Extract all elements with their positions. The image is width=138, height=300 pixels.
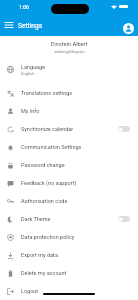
staticText: Feedback (no support) bbox=[21, 180, 77, 186]
button[interactable]: My Info bbox=[0, 102, 138, 120]
button[interactable]: Data protection policy bbox=[0, 228, 138, 246]
staticText: Authorisation code bbox=[21, 198, 68, 204]
staticText: Export my data bbox=[21, 252, 58, 258]
button[interactable]: Toggle Synchronize calendar bbox=[118, 126, 130, 132]
button[interactable]: Open navigation menu bbox=[1, 17, 17, 33]
button[interactable]: Communication Settings bbox=[0, 138, 138, 156]
staticText: Einstein Albert bbox=[51, 41, 88, 48]
button[interactable]: Export my data bbox=[0, 246, 138, 264]
staticText: Dark Theme bbox=[21, 216, 51, 222]
staticText: Delete my account bbox=[21, 270, 67, 276]
staticText: English bbox=[21, 71, 35, 76]
staticText: My Info bbox=[21, 108, 40, 114]
staticText: Logout bbox=[21, 288, 39, 294]
staticText: Data protection policy bbox=[21, 234, 75, 240]
staticText: Translations settings bbox=[21, 90, 73, 96]
staticText: Settings bbox=[18, 22, 43, 30]
staticText: Synchronize calendar bbox=[21, 126, 74, 132]
button[interactable]: Synchronize calendar bbox=[0, 120, 138, 138]
button[interactable]: Language bbox=[0, 57, 138, 82]
button[interactable]: Password change bbox=[0, 156, 138, 174]
button[interactable]: Delete my account bbox=[0, 264, 138, 282]
staticText: Communication Settings bbox=[21, 144, 82, 150]
button[interactable]: Feedback (no support) bbox=[0, 174, 138, 192]
button[interactable]: Dark Theme bbox=[0, 210, 138, 228]
button[interactable]: Toggle Dark Theme bbox=[118, 216, 130, 222]
button[interactable]: Logout bbox=[0, 282, 138, 300]
button[interactable]: Translations settings bbox=[0, 84, 138, 102]
button[interactable]: Authorisation code bbox=[0, 192, 138, 210]
button[interactable]: Account bbox=[120, 20, 136, 36]
staticText: Language bbox=[21, 64, 46, 70]
staticText: Password change bbox=[21, 162, 65, 168]
staticText: marketing@tiktopp.pro bbox=[54, 50, 85, 54]
staticText: 1:06 bbox=[19, 4, 30, 10]
